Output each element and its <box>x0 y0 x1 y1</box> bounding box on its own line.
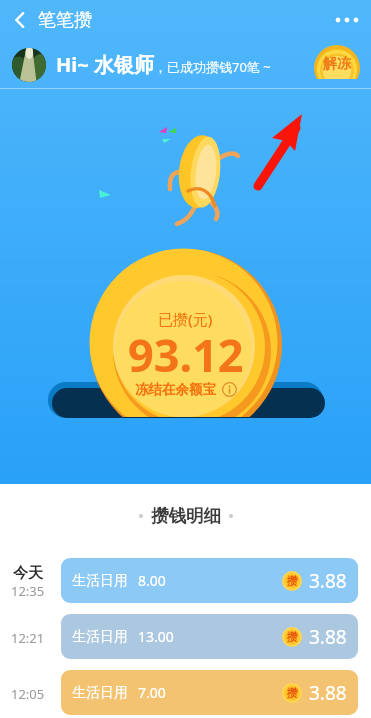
button[interactable]: Back <box>0 0 40 40</box>
staticText: 12:35 <box>11 582 45 600</box>
staticText: 3.88 <box>309 680 347 706</box>
staticText: 93.12 <box>128 324 244 385</box>
button[interactable]: 解冻 <box>314 45 360 79</box>
staticText: 解冻 <box>323 55 351 73</box>
staticText: 今天 <box>13 564 43 583</box>
staticText: ，已成功攒钱70笔 ~ <box>154 58 271 76</box>
button[interactable]: 生活日用 <box>61 558 358 603</box>
staticText: 攒钱明细 <box>151 505 221 527</box>
staticText: 生活日用 <box>72 684 128 702</box>
staticText: 生活日用 <box>72 628 128 646</box>
staticText: 12:05 <box>11 685 45 703</box>
staticText: 已攒(元) <box>158 309 213 329</box>
staticText: Hi~ 水银师 <box>56 51 154 78</box>
staticText: 3.88 <box>309 624 347 650</box>
staticText: 攒 <box>287 630 298 644</box>
button[interactable]: 生活日用 <box>61 614 358 659</box>
staticText: 13.00 <box>138 627 174 646</box>
button[interactable]: More options <box>327 0 371 40</box>
staticText: 生活日用 <box>72 572 128 590</box>
button[interactable]: Info <box>222 382 237 397</box>
staticText: 7.00 <box>138 683 166 702</box>
staticText: 攒 <box>287 574 298 588</box>
staticText: 12:21 <box>11 629 45 647</box>
staticText: 8.00 <box>138 571 166 590</box>
button[interactable]: 生活日用 <box>61 670 358 715</box>
staticText: 攒 <box>287 686 298 700</box>
staticText: 3.88 <box>309 568 347 594</box>
staticText: 冻结在余额宝 <box>135 381 216 398</box>
staticText: 笔笔攒 <box>38 9 92 32</box>
